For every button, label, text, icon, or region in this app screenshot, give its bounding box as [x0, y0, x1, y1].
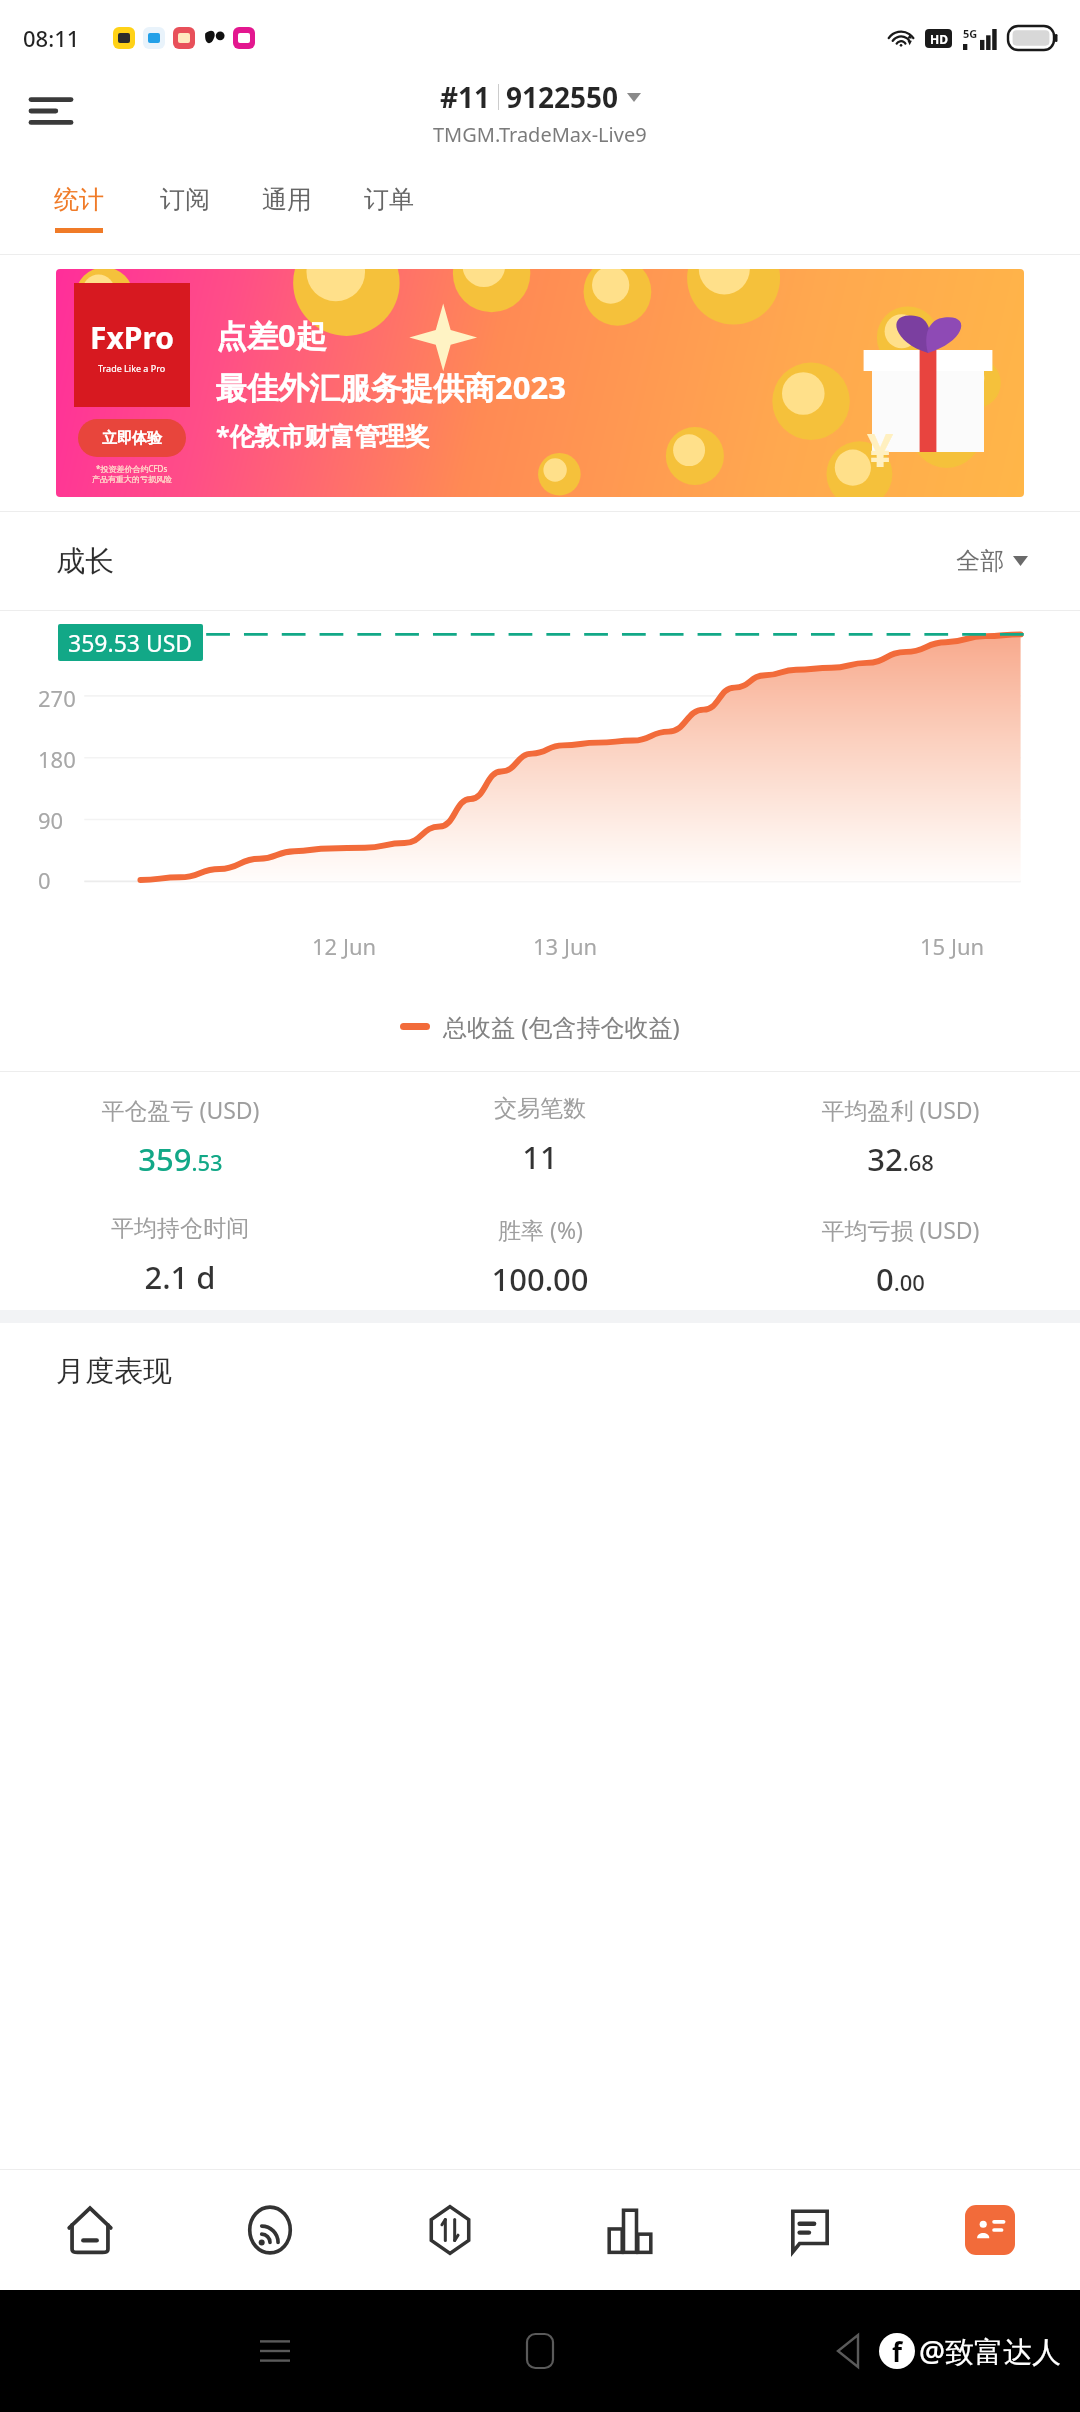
- staticText: 成长: [56, 543, 114, 580]
- staticText: 平仓盈亏 (USD): [101, 1094, 260, 1125]
- staticText: 平均盈利 (USD): [821, 1094, 980, 1125]
- staticText: 5G: [963, 26, 978, 41]
- staticText: #11: [440, 78, 491, 116]
- button[interactable]: Recents: [250, 2326, 300, 2376]
- staticText: 90: [38, 805, 64, 835]
- button[interactable]: #11: [433, 78, 647, 148]
- staticText: 15 Jun: [920, 931, 985, 961]
- staticText: 订单: [364, 184, 414, 215]
- staticText: 32.68: [867, 1138, 934, 1180]
- staticText: 180: [38, 744, 76, 774]
- staticText: 9122550: [506, 78, 619, 116]
- staticText: f: [892, 2334, 903, 2369]
- staticText: 交易笔数: [494, 1094, 586, 1123]
- button[interactable]: 胜率 (%): [360, 1214, 720, 1300]
- staticText: 2.1 d: [144, 1256, 216, 1298]
- staticText: 11: [522, 1136, 558, 1178]
- staticText: HD: [930, 31, 948, 47]
- button[interactable]: 全部: [956, 546, 1028, 576]
- staticText: TMGM.TradeMax-Live9: [433, 121, 647, 148]
- staticText: *投资差价合约CFDs: [96, 463, 168, 474]
- staticText: 立即体验: [102, 429, 162, 448]
- staticText: 统计: [54, 184, 104, 215]
- button[interactable]: ¥: [56, 269, 1024, 497]
- button[interactable]: 订单: [338, 180, 440, 237]
- staticText: 产品有重大的亏损风险: [92, 474, 172, 484]
- staticText: 平均亏损 (USD): [821, 1214, 980, 1245]
- staticText: 270: [38, 683, 76, 713]
- staticText: *伦敦市财富管理奖: [216, 418, 430, 452]
- button[interactable]: 平均盈利 (USD): [720, 1094, 1080, 1180]
- button[interactable]: Back: [823, 2326, 873, 2376]
- staticText: 胜率 (%): [498, 1214, 583, 1245]
- staticText: 359.53 USD: [68, 627, 193, 658]
- staticText: 0: [38, 865, 51, 895]
- button[interactable]: Signals: [180, 2170, 360, 2290]
- staticText: 08:11: [23, 23, 80, 53]
- staticText: 100.00: [491, 1258, 589, 1300]
- button[interactable]: Messages: [720, 2170, 900, 2290]
- staticText: Trade Like a Pro: [98, 362, 166, 374]
- staticText: 12 Jun: [312, 931, 377, 961]
- button[interactable]: Home: [0, 2170, 180, 2290]
- staticText: 13 Jun: [533, 931, 598, 961]
- staticText: 最佳外汇服务提供商2023: [216, 366, 566, 408]
- staticText: 月度表现: [56, 1353, 172, 1390]
- staticText: FxPro: [90, 317, 174, 358]
- button[interactable]: 通用: [236, 180, 338, 237]
- button[interactable]: 统计: [28, 180, 130, 237]
- button[interactable]: 平仓盈亏 (USD): [0, 1094, 360, 1180]
- button[interactable]: Menu: [22, 82, 80, 140]
- staticText: @致富达人: [919, 2331, 1062, 2371]
- staticText: 平均持仓时间: [111, 1214, 249, 1243]
- staticText: 总收益 (包含持仓收益): [443, 1010, 680, 1043]
- button[interactable]: Trade: [360, 2170, 540, 2290]
- staticText: 订阅: [160, 184, 210, 215]
- button[interactable]: 平均持仓时间: [0, 1214, 360, 1298]
- staticText: ¥: [867, 418, 894, 481]
- staticText: 359.53: [138, 1138, 223, 1180]
- button[interactable]: Profile: [900, 2170, 1080, 2290]
- staticText: 0.00: [876, 1258, 925, 1300]
- button[interactable]: 订阅: [134, 180, 236, 237]
- button[interactable]: Home: [515, 2326, 565, 2376]
- staticText: 通用: [262, 184, 312, 215]
- button[interactable]: 交易笔数: [360, 1094, 720, 1178]
- staticText: 全部: [956, 546, 1004, 576]
- button[interactable]: 平均亏损 (USD): [720, 1214, 1080, 1300]
- button[interactable]: Statistics: [540, 2170, 720, 2290]
- staticText: 点差0起: [216, 314, 327, 356]
